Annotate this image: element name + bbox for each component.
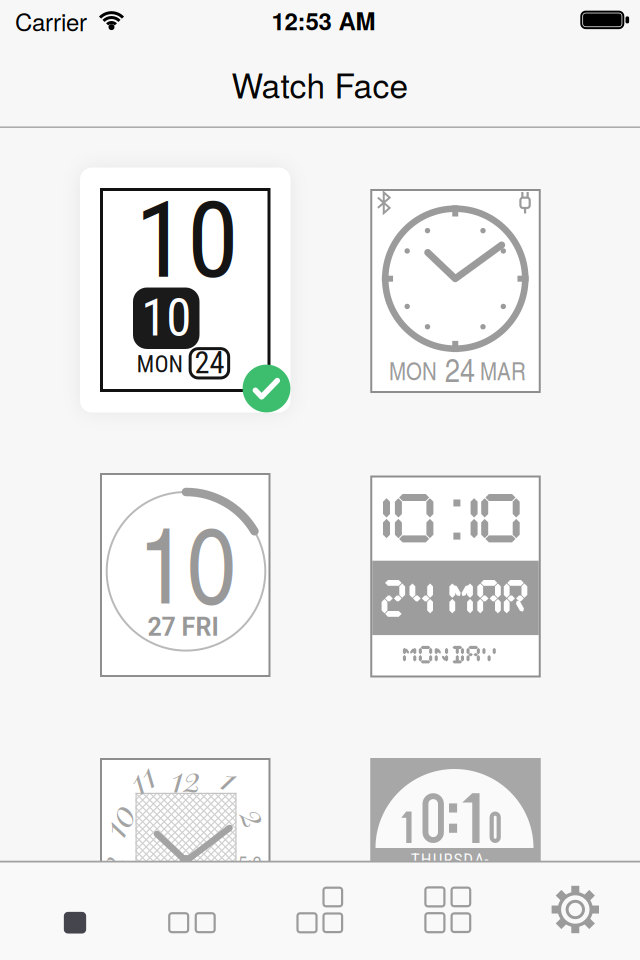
- staticText: MON: [389, 353, 437, 387]
- staticText: 12:53 AM: [271, 3, 375, 38]
- staticText: 10: [135, 179, 239, 302]
- button[interactable]: One column layout: [0, 859, 128, 960]
- button[interactable]: Digital watch face: [370, 475, 541, 677]
- staticText: Carrier: [15, 4, 87, 38]
- button[interactable]: Analog watch face: [370, 189, 541, 393]
- staticText: 1: [224, 754, 236, 801]
- button[interactable]: Modular watch face, selected: [80, 167, 290, 412]
- staticText: 24: [194, 345, 224, 381]
- button[interactable]: Activity watch face: [100, 473, 270, 677]
- staticText: 2: [247, 794, 265, 840]
- button[interactable]: Four item grid layout: [384, 859, 512, 960]
- staticText: MON: [136, 350, 183, 378]
- staticText: 5:3: [238, 849, 261, 876]
- staticText: 10: [138, 487, 236, 634]
- staticText: 24: [445, 346, 475, 391]
- staticText: 27 FRI: [147, 613, 218, 642]
- staticText: THURSDAY: [411, 849, 493, 870]
- staticText: 10: [101, 796, 133, 843]
- button[interactable]: Two column layout: [128, 859, 256, 960]
- button[interactable]: Three item layout: [256, 859, 384, 960]
- staticText: 11: [129, 754, 153, 801]
- staticText: MAR: [480, 353, 526, 387]
- staticText: 12: [171, 755, 201, 801]
- staticText: 10: [141, 288, 191, 348]
- button[interactable]: Bold digital watch face: [370, 758, 541, 960]
- staticText: Watch Face: [231, 60, 408, 108]
- button[interactable]: Classic watch face: [100, 758, 270, 960]
- staticText: 8: [108, 846, 124, 886]
- button[interactable]: Settings: [512, 859, 640, 960]
